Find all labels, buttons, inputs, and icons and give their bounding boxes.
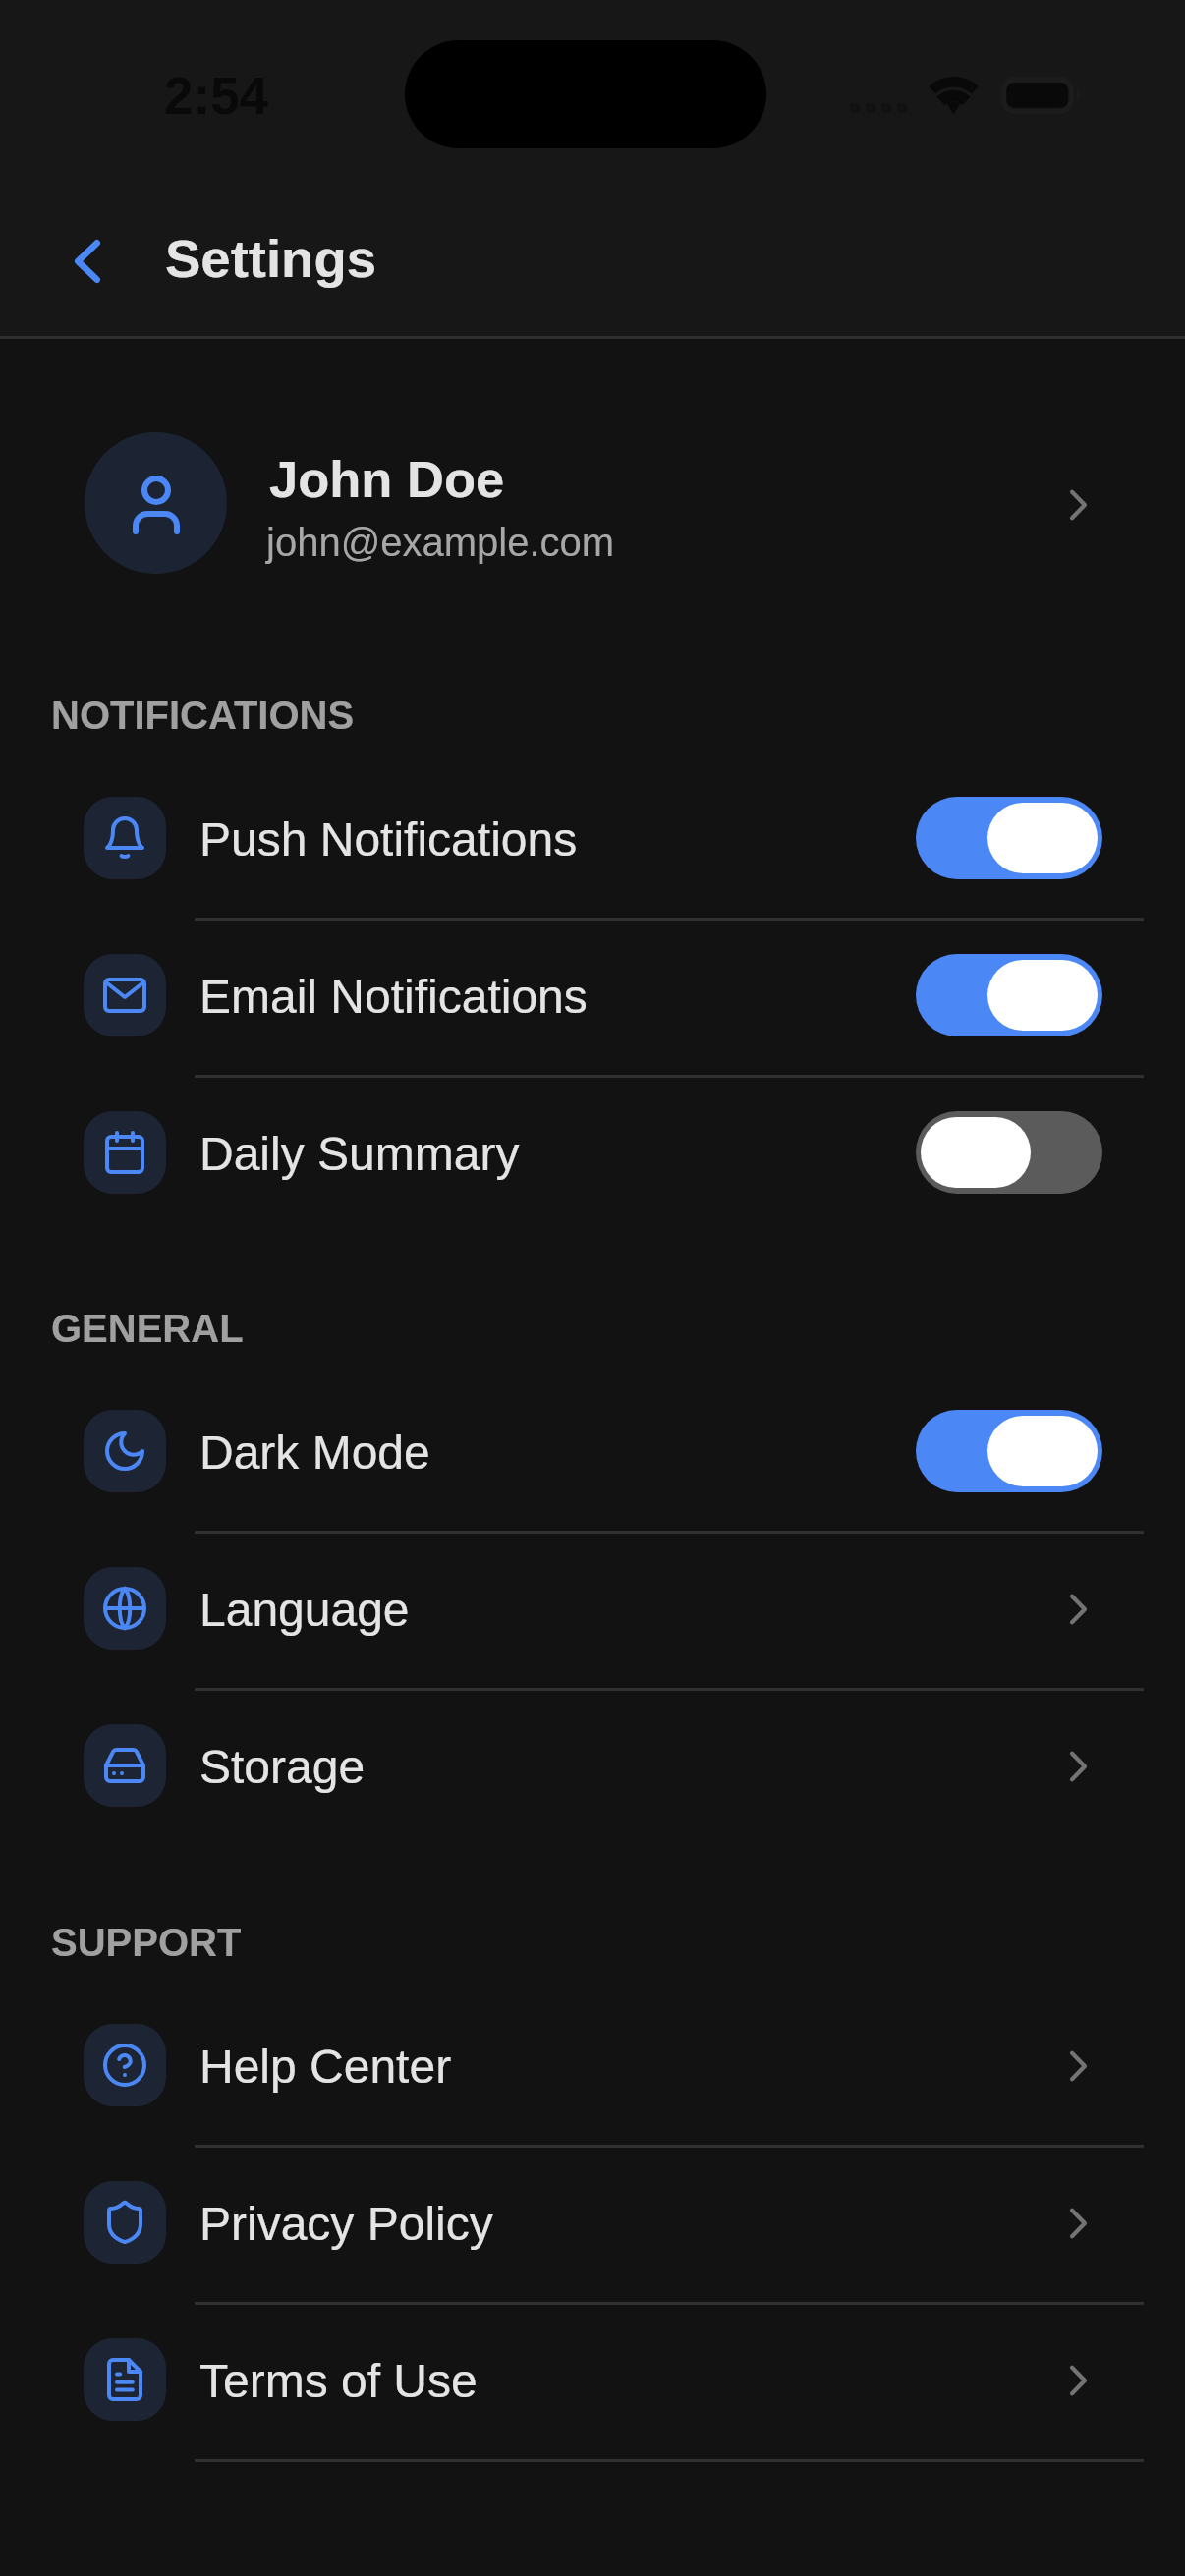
- staticText: 2:54: [164, 67, 269, 125]
- button[interactable]: John Doe: [0, 432, 1185, 574]
- staticText: Push Notifications: [199, 813, 578, 867]
- staticText: Privacy Policy: [199, 2198, 493, 2251]
- button[interactable]: Dark Mode: [0, 1372, 1185, 1530]
- staticText: Settings: [165, 229, 376, 289]
- staticText: Help Center: [199, 2041, 452, 2094]
- button[interactable]: Terms of Use: [0, 2301, 1185, 2458]
- staticText: Terms of Use: [199, 2355, 478, 2408]
- staticText: Email Notifications: [199, 971, 588, 1024]
- button[interactable]: Privacy Policy: [0, 2144, 1185, 2301]
- staticText: Language: [199, 1584, 410, 1637]
- staticText: Dark Mode: [199, 1427, 430, 1480]
- button[interactable]: Language: [0, 1530, 1185, 1687]
- staticText: GENERAL: [51, 1307, 244, 1351]
- button[interactable]: Toggle Push Notifications: [916, 797, 1102, 879]
- staticText: John Doe: [269, 450, 505, 508]
- staticText: NOTIFICATIONS: [51, 694, 355, 738]
- button[interactable]: Email Notifications: [0, 917, 1185, 1074]
- button[interactable]: Toggle Email Notifications: [916, 954, 1102, 1036]
- staticText: Storage: [199, 1741, 366, 1794]
- button[interactable]: Push Notifications: [0, 759, 1185, 917]
- button[interactable]: Storage: [0, 1687, 1185, 1844]
- staticText: john@example.com: [266, 521, 615, 565]
- button[interactable]: Help Center: [0, 1987, 1185, 2144]
- button[interactable]: Back: [25, 198, 150, 324]
- button[interactable]: Daily Summary: [0, 1074, 1185, 1231]
- button[interactable]: Toggle Dark Mode: [916, 1410, 1102, 1492]
- button[interactable]: Toggle Daily Summary: [916, 1111, 1102, 1194]
- staticText: Daily Summary: [199, 1128, 520, 1181]
- staticText: SUPPORT: [51, 1921, 242, 1965]
